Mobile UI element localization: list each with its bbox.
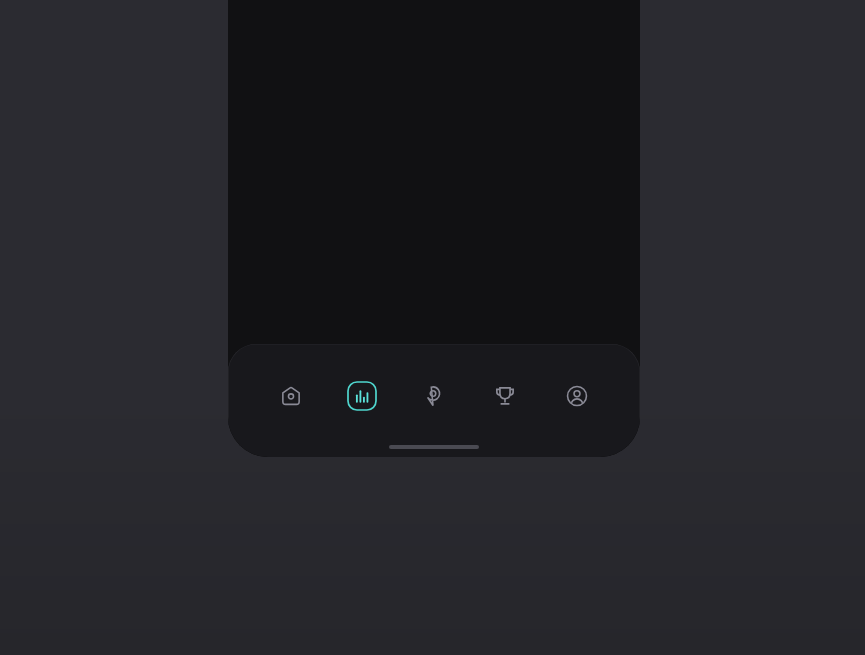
button[interactable]: Home: [255, 370, 326, 422]
button[interactable]: Achievements: [469, 370, 541, 422]
button[interactable]: Places: [397, 370, 469, 422]
button[interactable]: Profile: [541, 370, 613, 422]
button[interactable]: Statistics: [326, 370, 397, 422]
